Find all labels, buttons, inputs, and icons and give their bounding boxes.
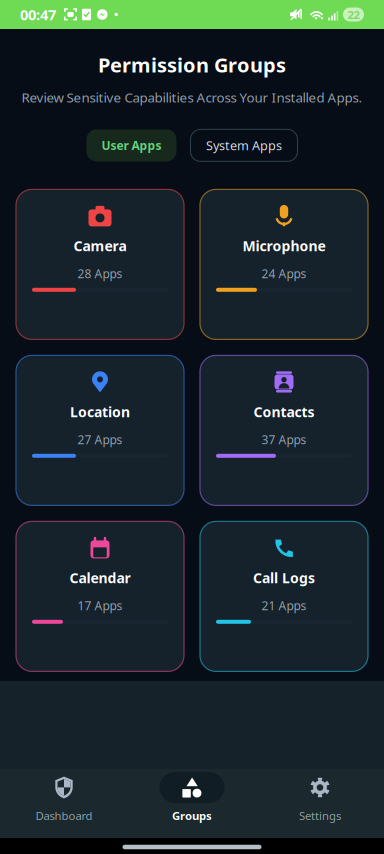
staticText: Microphone [242,236,325,255]
staticText: 22 [347,7,359,22]
staticText: System Apps [206,137,282,154]
staticText: Dashboard [35,808,92,823]
button[interactable]: Camera [16,189,184,339]
button[interactable]: Calendar [16,521,184,671]
staticText: Contacts [253,402,314,421]
staticText: User Apps [101,137,161,153]
staticText: Camera [73,236,126,255]
staticText: 27 Apps [77,431,122,448]
staticText: 17 Apps [77,597,122,614]
staticText: Calendar [69,568,130,587]
staticText: 37 Apps [261,431,306,448]
staticText: Permission Groups [98,51,286,78]
staticText: Location [70,402,130,421]
staticText: 24 Apps [261,265,306,282]
button[interactable]: Settings [256,769,384,838]
staticText: Call Logs [253,568,315,587]
staticText: Groups [172,808,212,823]
button[interactable]: Microphone [200,189,368,339]
button[interactable]: Contacts [200,355,368,505]
staticText: Review Sensitive Capabilities Across You… [21,88,362,106]
button[interactable]: Call Logs [200,521,368,671]
staticText: 28 Apps [77,265,122,282]
button[interactable]: Location [16,355,184,505]
staticText: 00:47 [20,4,56,24]
staticText: Settings [299,808,341,823]
button[interactable]: Groups [128,769,256,838]
button[interactable]: Dashboard [0,769,128,838]
staticText: 21 Apps [261,597,306,614]
button[interactable]: System Apps [190,129,297,161]
button[interactable]: User Apps [86,129,176,161]
